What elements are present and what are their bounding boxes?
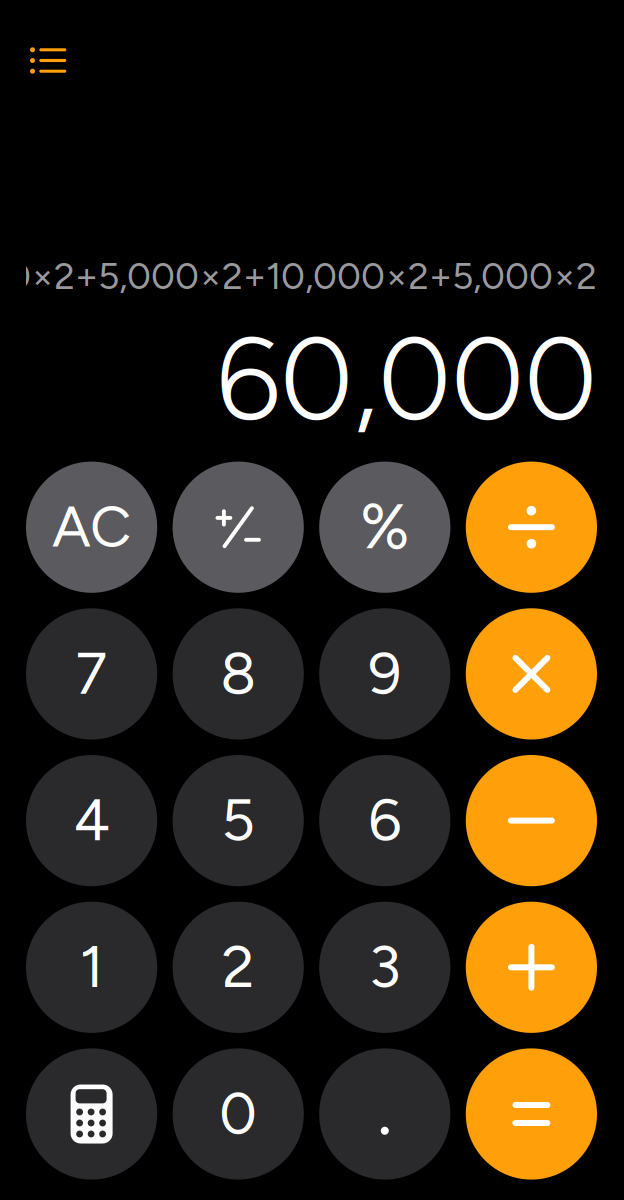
- button[interactable]: Subtract: [466, 755, 597, 886]
- staticText: 4: [74, 785, 110, 855]
- staticText: 7: [76, 638, 108, 708]
- staticText: %: [360, 489, 409, 564]
- button[interactable]: Toggle sign: [173, 462, 304, 593]
- button[interactable]: 1: [26, 902, 157, 1033]
- staticText: 3: [369, 931, 401, 1002]
- staticText: 0×2+5,000×2+10,000×2+5,000×2: [7, 254, 597, 298]
- button[interactable]: %: [319, 462, 450, 593]
- button[interactable]: Multiply: [466, 608, 597, 739]
- button[interactable]: 8: [173, 608, 304, 739]
- button[interactable]: Decimal point: [319, 1048, 450, 1180]
- button[interactable]: 3: [319, 902, 450, 1033]
- staticText: 5: [221, 785, 255, 855]
- button[interactable]: Calculator mode: [26, 1048, 157, 1180]
- button[interactable]: 7: [26, 608, 157, 739]
- button[interactable]: 9: [319, 608, 450, 739]
- button[interactable]: History: [24, 37, 72, 85]
- button[interactable]: 4: [26, 755, 157, 886]
- button[interactable]: Divide: [466, 462, 597, 593]
- staticText: 8: [220, 638, 256, 708]
- button[interactable]: 2: [173, 902, 304, 1033]
- button[interactable]: 0: [173, 1048, 304, 1180]
- staticText: 6: [368, 785, 401, 855]
- staticText: 0: [219, 1078, 257, 1148]
- button[interactable]: 6: [319, 755, 450, 886]
- button[interactable]: Equals: [466, 1048, 597, 1180]
- staticText: 1: [80, 931, 104, 1002]
- button[interactable]: 5: [173, 755, 304, 886]
- staticText: 60,000: [216, 310, 597, 448]
- button[interactable]: Add: [466, 902, 597, 1033]
- staticText: AC: [52, 492, 131, 561]
- staticText: 9: [368, 638, 401, 708]
- staticText: 2: [222, 931, 255, 1002]
- button[interactable]: AC: [26, 462, 157, 593]
